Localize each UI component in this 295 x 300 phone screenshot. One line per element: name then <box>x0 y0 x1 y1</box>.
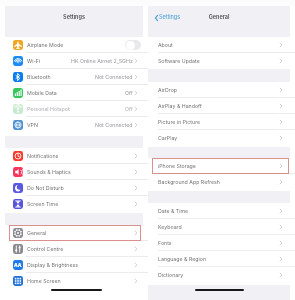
staticText: Settings <box>159 14 181 21</box>
staticText: Background App Refresh <box>158 179 220 185</box>
staticText: Wi-Fi <box>27 58 41 64</box>
staticText: AirPlay & Handoff <box>158 103 202 109</box>
staticText: Sounds & Haptics <box>27 169 71 175</box>
staticText: iPhone Storage <box>158 163 196 169</box>
button[interactable]: CarPlay <box>148 130 290 146</box>
staticText: Fonts <box>158 240 172 246</box>
button[interactable]: About <box>148 37 290 53</box>
staticText: Personal Hotspot <box>27 106 70 112</box>
staticText: Screen Time <box>27 201 59 207</box>
button[interactable]: iPhone Storage <box>148 158 290 174</box>
staticText: VPN <box>27 122 38 128</box>
button[interactable]: Dictionary <box>148 267 290 283</box>
button[interactable]: Control Centre <box>5 241 143 257</box>
button[interactable]: VPN <box>5 117 143 133</box>
staticText: Airplane Mode <box>27 42 64 48</box>
staticText: Settings <box>5 14 143 21</box>
staticText: Keyboard <box>158 224 182 230</box>
staticText: Language & Region <box>158 256 207 262</box>
button[interactable]: Back to Settings <box>155 13 181 22</box>
button[interactable]: AA <box>5 257 143 273</box>
button[interactable]: Personal Hotspot <box>5 101 143 117</box>
button[interactable]: Do Not Disturb <box>5 180 143 196</box>
staticText: Dictionary <box>158 272 184 278</box>
button[interactable]: AirDrop <box>148 82 290 98</box>
staticText: Home Screen <box>27 278 61 284</box>
button[interactable]: AirPlay & Handoff <box>148 98 290 114</box>
button[interactable]: Bluetooth <box>5 69 143 85</box>
staticText: HK Online Airnet 2_5GHz <box>71 58 133 64</box>
staticText: Not Connected <box>95 122 133 128</box>
button[interactable]: Keyboard <box>148 219 290 235</box>
staticText: Date & Time <box>158 208 189 214</box>
button[interactable]: Airplane Mode toggle <box>125 40 141 50</box>
button[interactable]: Home Screen <box>5 273 143 289</box>
staticText: Mobile Data <box>27 90 57 96</box>
button[interactable]: Airplane Mode <box>5 37 143 53</box>
staticText: Notifications <box>27 153 59 159</box>
staticText: CarPlay <box>158 135 178 141</box>
staticText: About <box>158 42 173 48</box>
button[interactable]: Date & Time <box>148 203 290 219</box>
button[interactable]: Fonts <box>148 235 290 251</box>
button[interactable]: Wi-Fi <box>5 53 143 69</box>
button[interactable]: Background App Refresh <box>148 174 290 190</box>
button[interactable]: Mobile Data <box>5 85 143 101</box>
staticText: Do Not Disturb <box>27 185 64 191</box>
staticText: Control Centre <box>27 246 64 252</box>
button[interactable]: Screen Time <box>5 196 143 212</box>
staticText: AA <box>14 262 22 268</box>
button[interactable]: Sounds & Haptics <box>5 164 143 180</box>
staticText: Off <box>125 90 133 96</box>
button[interactable]: General <box>5 225 143 241</box>
staticText: General <box>27 230 47 236</box>
staticText: AirDrop <box>158 87 178 93</box>
button[interactable]: Notifications <box>5 148 143 164</box>
staticText: Picture in Picture <box>158 119 201 125</box>
staticText: Display & Brightness <box>27 262 78 268</box>
staticText: Off <box>125 106 133 112</box>
staticText: Software Update <box>158 58 200 64</box>
staticText: Not Connected <box>95 74 133 80</box>
staticText: Bluetooth <box>27 74 51 80</box>
button[interactable]: Language & Region <box>148 251 290 267</box>
staticText: General <box>148 14 290 21</box>
button[interactable]: Picture in Picture <box>148 114 290 130</box>
button[interactable]: Software Update <box>148 53 290 69</box>
